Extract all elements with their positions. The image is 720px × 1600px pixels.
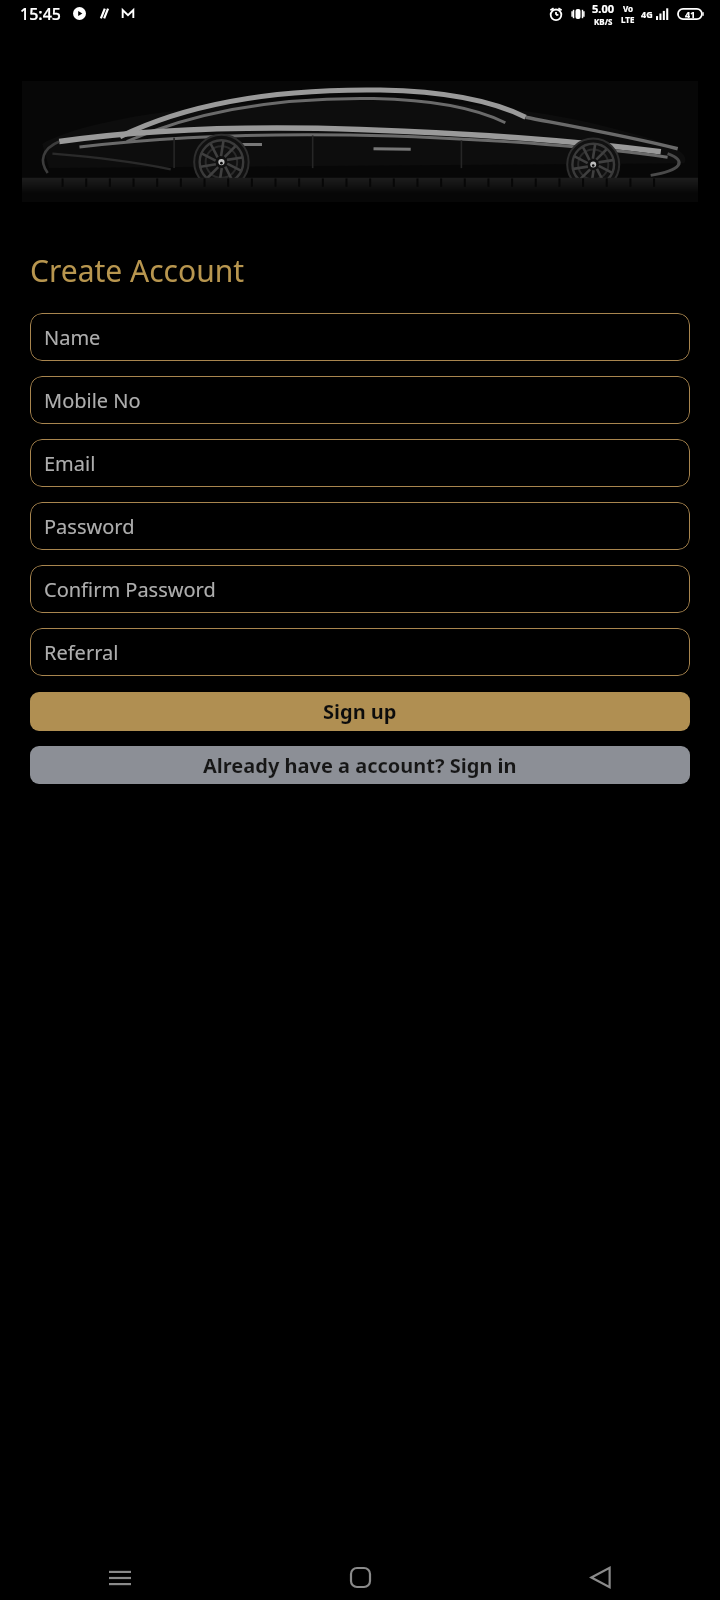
button[interactable]: Back (480, 1555, 720, 1600)
staticText: Sign up (323, 698, 397, 725)
button[interactable]: Mobile No (30, 376, 690, 424)
button[interactable]: Sign up (30, 692, 690, 731)
staticText: LTE (621, 14, 635, 25)
staticText: 15:45 (20, 3, 61, 25)
button[interactable]: Name (30, 313, 690, 361)
staticText: Referral (44, 639, 119, 666)
staticText: Vo (623, 3, 634, 14)
button[interactable]: Home (240, 1555, 480, 1600)
button[interactable]: Referral (30, 628, 690, 676)
button[interactable]: Confirm Password (30, 565, 690, 613)
staticText: Password (44, 513, 135, 540)
staticText: 41 (685, 8, 696, 20)
staticText: Mobile No (44, 387, 141, 414)
staticText: Email (44, 450, 96, 477)
staticText: 5.00 (592, 1, 614, 16)
staticText: 4G (641, 8, 653, 20)
staticText: Already have a account? Sign in (203, 752, 517, 779)
button[interactable]: Email (30, 439, 690, 487)
staticText: KB/S (594, 16, 613, 27)
button[interactable]: Recent apps (0, 1555, 240, 1600)
staticText: Create Account (30, 250, 245, 291)
staticText: Name (44, 324, 101, 351)
button[interactable]: Password (30, 502, 690, 550)
staticText: Confirm Password (44, 576, 216, 603)
button[interactable]: Already have a account? Sign in (30, 746, 690, 784)
